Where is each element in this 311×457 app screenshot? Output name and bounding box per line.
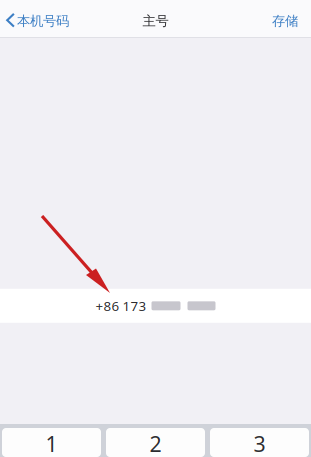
button[interactable]: 2 xyxy=(106,428,205,457)
staticText: 2 xyxy=(149,429,161,457)
staticText: +86 173 xyxy=(95,297,146,315)
staticText: 本机号码 xyxy=(17,13,69,29)
staticText: 主号 xyxy=(142,13,168,29)
button[interactable]: 存储 xyxy=(262,3,311,34)
staticText: 1 xyxy=(45,429,57,457)
staticText: 3 xyxy=(253,429,265,457)
button[interactable]: 3 xyxy=(210,428,309,457)
button[interactable]: 1 xyxy=(2,428,101,457)
staticText: 存储 xyxy=(272,13,298,29)
button[interactable]: 本机号码 xyxy=(0,3,77,34)
